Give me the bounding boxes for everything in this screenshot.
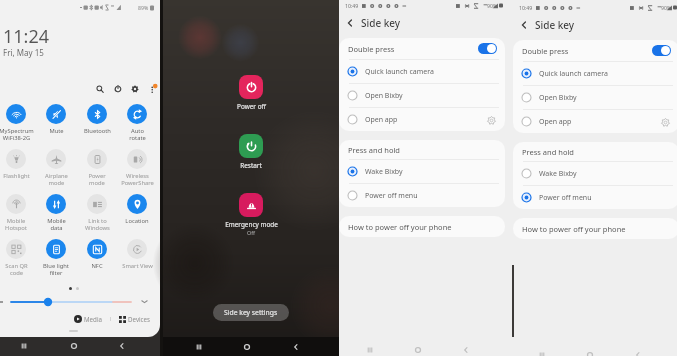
button[interactable]: Power — [113, 84, 122, 93]
button[interactable]: Settings — [130, 84, 139, 93]
button[interactable]: Back — [114, 338, 130, 354]
button[interactable]: Search — [95, 84, 104, 93]
staticText: Smart View — [122, 262, 153, 270]
button[interactable]: Blue light filter — [36, 239, 76, 277]
button[interactable]: Side key settings — [213, 304, 289, 321]
staticText: Side key — [535, 18, 575, 32]
button[interactable]: Recent apps — [534, 347, 550, 356]
button[interactable]: Wake Bixby — [339, 160, 505, 183]
button[interactable]: Home — [239, 339, 255, 355]
button[interactable]: Quick launch camera — [513, 62, 677, 85]
button[interactable]: Recent apps — [16, 338, 32, 354]
staticText: Double press — [348, 44, 395, 54]
button[interactable]: Mute — [36, 104, 76, 135]
button[interactable]: Power off menu — [339, 184, 505, 207]
staticText: 10:49 — [345, 2, 359, 9]
button[interactable]: Open app — [513, 110, 677, 133]
staticText: Press and hold — [522, 147, 574, 157]
staticText: Location — [125, 217, 149, 225]
button[interactable]: Recent apps — [362, 342, 378, 356]
button[interactable]: Back — [630, 347, 646, 356]
button[interactable]: How to power off your phone — [513, 218, 677, 239]
button[interactable]: Scan QR code — [0, 239, 36, 277]
button[interactable]: Choose app — [659, 116, 671, 128]
staticText: Open Bixby — [365, 91, 403, 101]
staticText: Bluetooth — [84, 127, 111, 135]
staticText: Mobile data — [47, 217, 66, 232]
button[interactable]: Home — [410, 342, 426, 356]
staticText: Media — [84, 315, 102, 323]
button[interactable]: Auto rotate — [117, 104, 157, 142]
button[interactable]: Airplane mode — [36, 149, 76, 187]
button[interactable]: NFC — [77, 239, 117, 270]
staticText: Restart — [240, 161, 262, 170]
staticText: Off — [247, 229, 255, 236]
button[interactable]: Location — [117, 194, 157, 225]
staticText: Flashlight — [3, 172, 30, 180]
button[interactable]: Quick launch camera — [339, 60, 505, 83]
staticText: Quick launch camera — [365, 67, 434, 77]
button[interactable]: Home — [66, 338, 82, 354]
staticText: 90% — [487, 2, 498, 9]
staticText: 89% — [138, 4, 149, 11]
staticText: Power off — [237, 102, 266, 111]
staticText: NFC — [91, 262, 103, 270]
button[interactable]: Flashlight — [0, 149, 36, 180]
button[interactable]: Open app — [339, 108, 505, 131]
button[interactable]: Wireless PowerShare — [117, 149, 157, 187]
button[interactable]: Mobile data — [36, 194, 76, 232]
button[interactable]: Double press switch — [478, 43, 497, 54]
button[interactable]: Restart — [163, 134, 339, 170]
button[interactable]: Smart View — [117, 239, 157, 270]
staticText: Link to Windows — [85, 217, 110, 232]
staticText: How to power off your phone — [348, 222, 452, 232]
staticText: Mute — [49, 127, 64, 135]
staticText: Power off menu — [539, 193, 592, 203]
staticText: Power mode — [88, 172, 106, 187]
staticText: Open app — [365, 115, 398, 125]
button[interactable]: Double press switch — [652, 45, 671, 56]
button[interactable]: Open Bixby — [513, 86, 677, 109]
staticText: Mobile Hotspot — [5, 217, 27, 232]
staticText: MySpectrum WiFi38-2G — [0, 127, 34, 142]
staticText: Side key settings — [224, 308, 278, 317]
staticText: Power off menu — [365, 191, 418, 201]
staticText: How to power off your phone — [522, 224, 626, 234]
button[interactable]: Expand brightness — [139, 296, 150, 307]
button[interactable]: Double press — [339, 38, 505, 59]
button[interactable]: Recent apps — [191, 339, 207, 355]
staticText: Press and hold — [348, 145, 400, 155]
staticText: Open Bixby — [539, 93, 577, 103]
staticText: Scan QR code — [5, 262, 28, 277]
button[interactable]: Double press — [513, 40, 677, 61]
staticText: 10:49 — [519, 4, 533, 11]
button[interactable]: Power off menu — [513, 186, 677, 209]
staticText: Devices — [128, 315, 151, 323]
button[interactable]: Home — [582, 347, 598, 356]
button[interactable]: Wake Bixby — [513, 162, 677, 185]
staticText: Side key — [361, 16, 401, 30]
button[interactable]: Devices — [119, 315, 151, 323]
button[interactable]: Media — [74, 315, 102, 323]
button[interactable]: More options — [148, 84, 157, 93]
button[interactable]: Navigate up — [517, 18, 531, 32]
button[interactable]: Navigate up — [343, 16, 357, 30]
staticText: Wireless PowerShare — [121, 172, 154, 187]
button[interactable]: MySpectrum WiFi38-2G — [0, 104, 36, 142]
staticText: Open app — [539, 117, 572, 127]
button[interactable]: Bluetooth — [77, 104, 117, 135]
button[interactable]: Choose app — [485, 114, 497, 126]
button[interactable]: Power mode — [77, 149, 117, 187]
button[interactable]: Open Bixby — [339, 84, 505, 107]
button[interactable]: Power off — [163, 75, 339, 111]
button[interactable]: How to power off your phone — [339, 216, 505, 237]
staticText: Wake Bixby — [365, 167, 403, 177]
button[interactable]: Emergency mode — [163, 193, 339, 236]
staticText: Blue light filter — [43, 262, 69, 277]
button[interactable]: Back — [288, 339, 304, 355]
staticText: 11:24 — [3, 24, 50, 49]
button[interactable]: Link to Windows — [77, 194, 117, 232]
staticText: Airplane mode — [45, 172, 68, 187]
button[interactable]: Mobile Hotspot — [0, 194, 36, 232]
button[interactable]: Back — [458, 342, 474, 356]
